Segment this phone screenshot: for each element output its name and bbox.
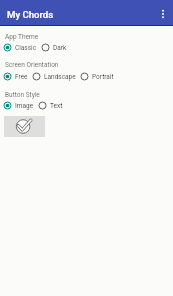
staticText: Portrait bbox=[92, 73, 114, 81]
button[interactable]: Classic bbox=[3, 43, 37, 52]
staticText: Classic bbox=[15, 44, 37, 52]
staticText: Free bbox=[15, 73, 28, 81]
button[interactable]: Free bbox=[3, 72, 28, 81]
button[interactable]: Dark bbox=[41, 43, 67, 52]
button[interactable]: Image bbox=[3, 101, 34, 110]
button[interactable]: Landscape bbox=[32, 72, 76, 81]
staticText: Screen Orientation bbox=[5, 61, 59, 69]
button[interactable]: More options bbox=[155, 6, 171, 22]
staticText: Dark bbox=[53, 44, 67, 52]
staticText: Image bbox=[15, 102, 34, 110]
staticText: Text bbox=[50, 102, 63, 110]
button[interactable]: Chord button preview bbox=[4, 116, 45, 137]
staticText: My Chords bbox=[7, 9, 54, 20]
staticText: Button Style bbox=[5, 91, 40, 99]
staticText: App Theme bbox=[5, 33, 39, 41]
button[interactable]: Text bbox=[38, 101, 63, 110]
staticText: Landscape bbox=[44, 73, 76, 81]
button[interactable]: Portrait bbox=[80, 72, 114, 81]
